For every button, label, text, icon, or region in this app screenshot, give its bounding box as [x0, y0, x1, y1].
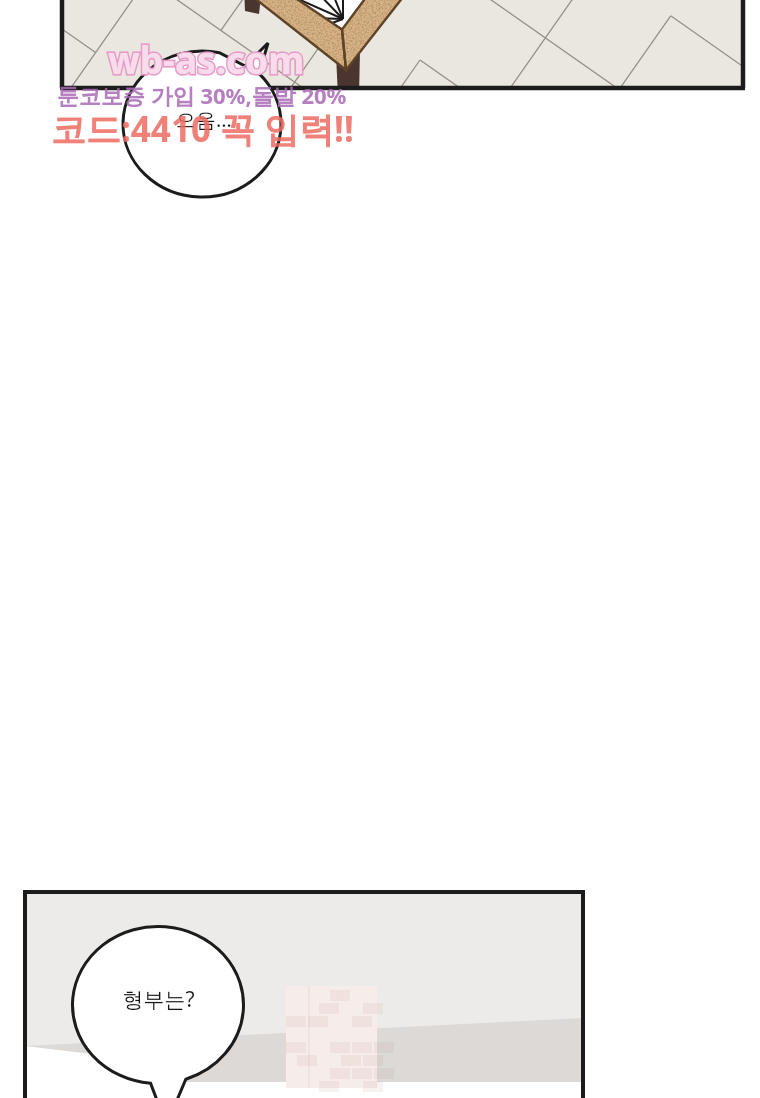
button[interactable]: [0, 0, 760, 1098]
